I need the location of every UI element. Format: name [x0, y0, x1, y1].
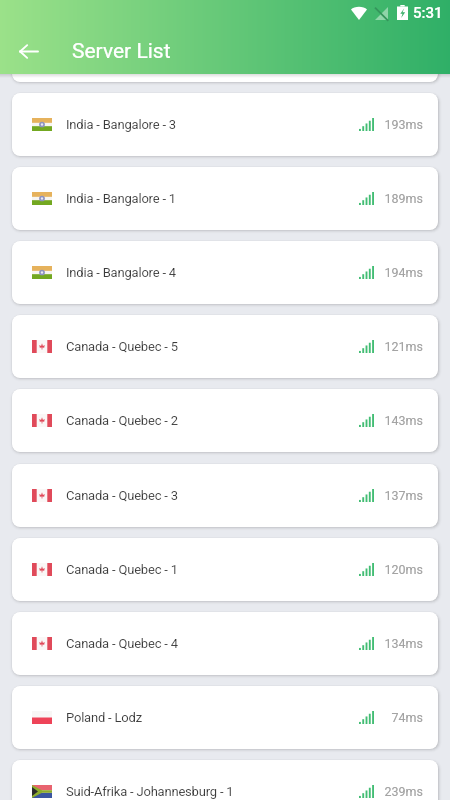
- staticText: Suid-Afrika - Johannesburg - 1: [66, 784, 234, 799]
- staticText: Canada - Quebec - 3: [66, 488, 178, 503]
- staticText: India - Bangalore - 3: [66, 117, 176, 132]
- staticText: 137ms: [384, 488, 423, 503]
- staticText: Poland - Lodz: [66, 710, 142, 725]
- staticText: Canada - Quebec - 2: [66, 413, 178, 428]
- button[interactable]: Canada - Quebec - 5: [12, 315, 438, 378]
- staticText: 239ms: [384, 784, 423, 799]
- staticText: Canada - Quebec - 1: [66, 562, 178, 577]
- staticText: 193ms: [384, 117, 423, 132]
- button[interactable]: India - Bangalore - 4: [12, 241, 438, 304]
- button[interactable]: Canada - Quebec - 1: [12, 538, 438, 601]
- button[interactable]: Canada - Quebec - 3: [12, 464, 438, 527]
- staticText: 143ms: [384, 413, 423, 428]
- button[interactable]: Back: [4, 29, 52, 73]
- staticText: 5:31: [413, 4, 443, 22]
- staticText: 120ms: [384, 562, 423, 577]
- button[interactable]: Canada - Quebec - 2: [12, 389, 438, 452]
- staticText: India - Bangalore - 4: [66, 265, 176, 280]
- staticText: 121ms: [384, 339, 423, 354]
- staticText: India - Bangalore - 1: [66, 191, 176, 206]
- button[interactable]: Poland - Lodz: [12, 686, 438, 749]
- button[interactable]: Suid-Afrika - Johannesburg - 1: [12, 760, 438, 800]
- staticText: Canada - Quebec - 4: [66, 636, 178, 651]
- button[interactable]: Canada - Quebec - 4: [12, 612, 438, 675]
- staticText: Canada - Quebec - 5: [66, 339, 178, 354]
- button[interactable]: India - Bangalore - 3: [12, 93, 438, 156]
- staticText: 194ms: [384, 265, 423, 280]
- button[interactable]: [12, 19, 438, 82]
- staticText: Server List: [72, 39, 171, 64]
- staticText: 74ms: [391, 710, 423, 725]
- staticText: 134ms: [384, 636, 423, 651]
- button[interactable]: India - Bangalore - 1: [12, 167, 438, 230]
- staticText: 189ms: [384, 191, 423, 206]
